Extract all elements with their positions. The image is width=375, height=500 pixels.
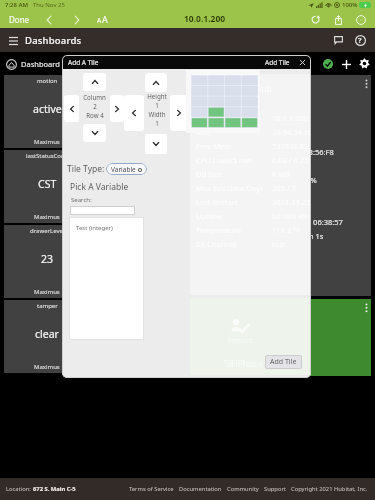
button[interactable]: A [97,13,108,25]
button[interactable]: Settings [358,57,371,70]
button[interactable]: Community [227,485,259,493]
staticText: Maximus [34,213,60,221]
button[interactable]: Tabs [354,13,367,26]
staticText: Present [228,337,254,347]
staticText: Pick A Variable [70,181,129,193]
staticText: 34:94:54:1B:56:F8 [272,147,334,157]
button[interactable]: motion [4,75,90,148]
button[interactable]: Menu [6,33,20,47]
button[interactable]: Add [340,58,352,70]
button[interactable]: Terms of Service [129,485,174,493]
staticText: motion [37,77,58,85]
staticText: A [97,16,102,25]
staticText: 34:94:54:1B:56:F8 [272,127,311,137]
button[interactable]: Close [298,58,306,66]
button[interactable]: Done [322,58,334,70]
staticText: Width [148,110,166,118]
button[interactable]: Increase width [170,95,187,131]
staticText: Add A Tile [68,58,99,67]
button[interactable]: Variable [106,163,147,175]
button[interactable]: lastStatusCode [4,150,90,223]
staticText: 2021-11-25 06:38:57 [272,217,343,227]
staticText: SJFiPhone [224,359,264,371]
staticText: Maximus [34,363,60,371]
button[interactable]: Home [5,58,17,70]
staticText: lastStatusCode [26,152,69,160]
button[interactable]: Increase height [145,73,167,92]
button[interactable]: Dashboard [21,59,60,69]
button[interactable]: Support [264,485,286,493]
staticText: Tile Type: [67,163,105,175]
button[interactable]: Done [9,14,30,25]
button[interactable]: tamper [4,300,90,373]
staticText: 0.03 / 0.75 % [272,155,311,165]
staticText: drawerLevel [30,227,65,235]
staticText: 672 S. Main C-5 [33,485,76,493]
button[interactable]: Test (integer) [76,224,113,232]
button[interactable]: Back [42,13,55,26]
staticText: 100% [342,1,358,9]
button[interactable]: Share [332,13,345,26]
button[interactable]: Increase row [83,73,106,91]
button[interactable]: Chat [330,32,346,48]
button[interactable]: drawerLevel [4,225,90,298]
staticText: A [102,13,108,25]
button[interactable]: Add Tile [265,58,290,67]
staticText: ? [358,35,362,45]
staticText: Variable [111,165,136,174]
button[interactable] [70,206,135,215]
staticText: C-5 / 2.3.0.112 [196,97,250,108]
staticText: 0d 00h 49m 1s [272,231,324,241]
staticText: 2021-11-25 06:38:57 [272,197,311,207]
button[interactable]: Forward [70,13,83,26]
button[interactable]: Decrease row [83,124,106,142]
button[interactable]: Reload [309,13,322,26]
staticText: Present [228,336,254,346]
staticText: Column [83,93,106,101]
staticText: Row 4 [86,111,104,119]
staticText: Thu Nov 25 [33,1,65,9]
button[interactable]: Documentation [179,485,222,493]
staticText: IP Addr [196,113,223,123]
staticText: 672 S. Main C-5 Hub [196,103,272,114]
button[interactable]: Decrease width [124,95,144,131]
staticText: Maximus [34,288,60,296]
button[interactable]: Help [352,32,368,48]
button[interactable]: Add Tile [265,355,302,369]
button[interactable]: Decrease height [145,134,167,154]
button[interactable]: Decrease column [64,95,79,122]
button[interactable]: Present [190,299,371,376]
staticText: tamper [37,302,58,310]
staticText: Location: [6,485,33,493]
staticText: SJFiPhone [224,358,264,370]
staticText: 672 S. Main C-5 Hub [196,83,272,94]
staticText: Height [147,92,167,100]
button[interactable]: Increase column [110,95,124,122]
staticText: Dashboards [25,34,82,47]
staticText: clear [35,327,59,341]
button[interactable]: 672 S. Main C-5 Hub [190,75,371,296]
staticText: Mac [196,127,211,137]
